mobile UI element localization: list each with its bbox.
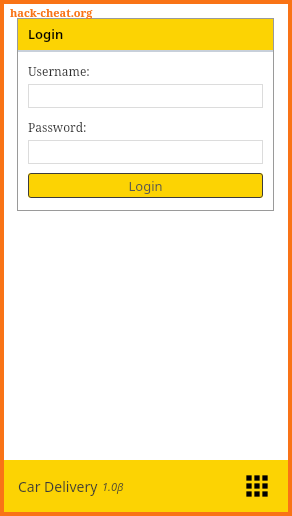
staticText: Login (28, 25, 64, 43)
button[interactable]: Login (28, 173, 263, 198)
button[interactable]: Password input (28, 140, 263, 164)
staticText: hack-cheat.org (10, 5, 93, 20)
staticText: Login (128, 177, 163, 195)
staticText: 1.0β (102, 479, 124, 494)
staticText: Username: (28, 63, 90, 79)
button[interactable]: Username input (28, 84, 263, 108)
staticText: Car Delivery (18, 477, 102, 496)
staticText: Password: (28, 119, 87, 135)
button[interactable]: Menu (240, 469, 274, 503)
button[interactable]: Car Delivery (4, 460, 288, 512)
